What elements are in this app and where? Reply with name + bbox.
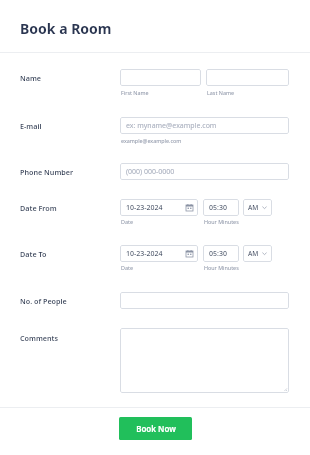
staticText: Hour Minutes: [204, 264, 239, 271]
button[interactable]: [120, 69, 201, 86]
staticText: Last Name: [207, 89, 234, 96]
staticText: Date To: [20, 249, 47, 259]
staticText: Comments: [20, 333, 59, 343]
button[interactable]: ex: myname@example.com: [120, 117, 289, 134]
staticText: Book a Room: [20, 19, 112, 38]
staticText: First Name: [121, 89, 149, 96]
staticText: Book Now: [136, 423, 176, 434]
staticText: 10-23-2024: [126, 203, 163, 213]
button[interactable]: 10-23-2024: [120, 245, 198, 262]
button[interactable]: [120, 328, 289, 393]
button[interactable]: 10-23-2024: [120, 199, 198, 216]
other: Select AM or PM: [262, 251, 267, 256]
other: Pick date: [186, 204, 193, 211]
staticText: AM: [248, 203, 259, 212]
staticText: example@example.com: [121, 137, 182, 144]
staticText: AM: [248, 249, 259, 258]
staticText: No. of People: [20, 296, 67, 306]
other: Pick date: [186, 250, 193, 257]
button[interactable]: (000) 000-0000: [120, 163, 289, 180]
button[interactable]: 05:30: [203, 245, 239, 262]
staticText: E-mail: [20, 121, 42, 131]
staticText: Hour Minutes: [204, 218, 239, 225]
button[interactable]: AM: [243, 245, 272, 262]
other: Select AM or PM: [262, 205, 267, 210]
staticText: ex: myname@example.com: [126, 121, 217, 131]
staticText: 10-23-2024: [126, 249, 163, 259]
button[interactable]: [120, 292, 289, 309]
button[interactable]: [206, 69, 289, 86]
staticText: Date: [121, 264, 133, 271]
staticText: Date From: [20, 203, 57, 213]
button[interactable]: Book Now: [119, 417, 192, 440]
staticText: 05:30: [209, 203, 227, 213]
staticText: Phone Number: [20, 167, 74, 177]
staticText: (000) 000-0000: [126, 167, 175, 177]
staticText: Name: [20, 73, 42, 83]
staticText: 05:30: [209, 249, 227, 259]
button[interactable]: AM: [243, 199, 272, 216]
button[interactable]: 05:30: [203, 199, 239, 216]
staticText: Date: [121, 218, 133, 225]
